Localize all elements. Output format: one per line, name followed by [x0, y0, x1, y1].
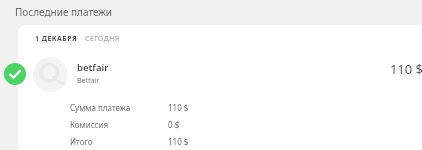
staticText: 110 $ [350, 60, 422, 78]
staticText: 110 $ [168, 136, 189, 147]
staticText: Сумма платежа [70, 102, 131, 113]
staticText: Комиссия [70, 119, 109, 130]
staticText: Последние платежи [15, 5, 113, 19]
button[interactable]: 1 ДЕКАБРЯ [18, 25, 422, 150]
staticText: betfair [77, 61, 109, 74]
staticText: 0 $ [168, 119, 180, 130]
staticText: Итого [70, 136, 93, 147]
staticText: СЕГОДНЯ [85, 34, 120, 44]
button[interactable]: Сумма платежа [18, 102, 422, 113]
staticText: Betfair [77, 76, 100, 86]
button[interactable]: Merchant logo [18, 57, 422, 92]
button[interactable]: Payment successful [4, 63, 26, 85]
staticText: 1 ДЕКАБРЯ [35, 34, 78, 44]
button[interactable]: Итого [18, 136, 422, 147]
staticText: 110 $ [168, 102, 189, 113]
other: Merchant logo [33, 57, 68, 92]
button[interactable]: Комиссия [18, 119, 422, 130]
